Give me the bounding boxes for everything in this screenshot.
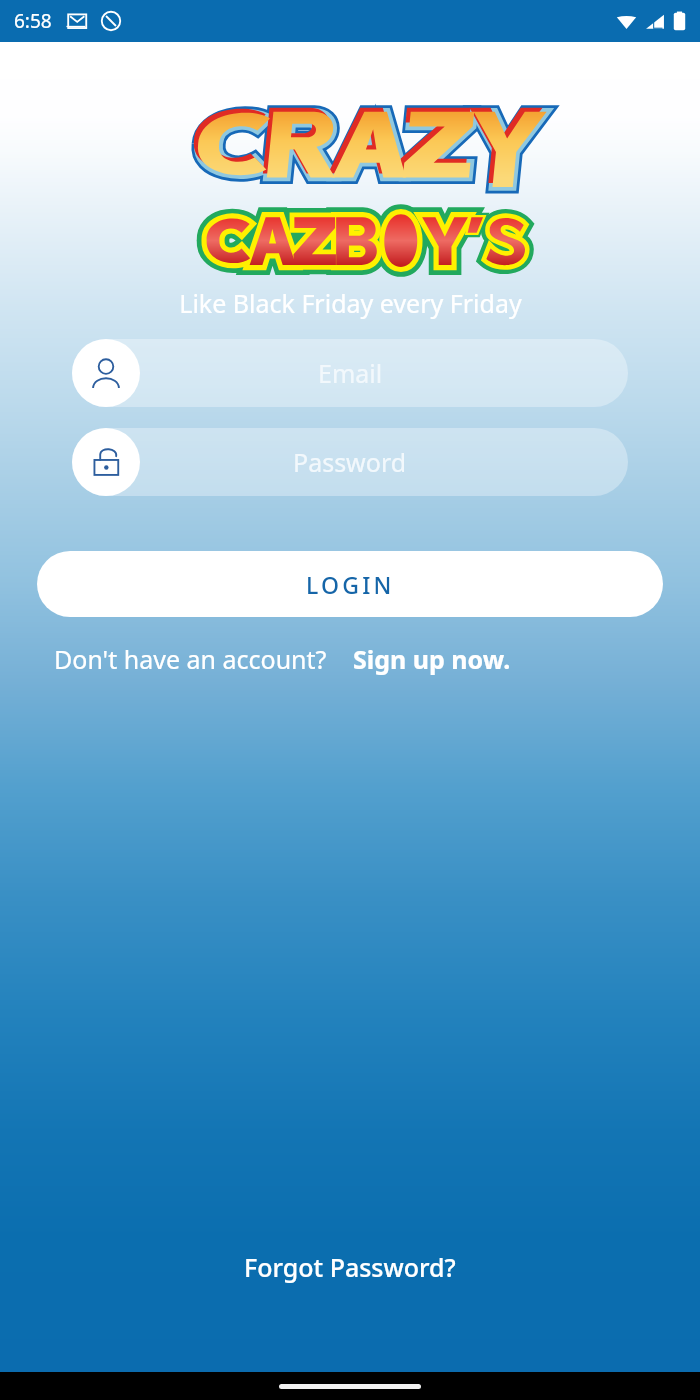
other: Password xyxy=(72,428,140,496)
staticText: Don't have an account? xyxy=(54,642,327,676)
staticText: Sign up now. xyxy=(353,642,511,676)
staticText: LOGIN xyxy=(306,569,395,600)
button[interactable]: Password xyxy=(72,428,628,496)
button[interactable]: Forgot Password? xyxy=(220,1240,480,1294)
staticText: 6:58 xyxy=(14,8,52,34)
staticText: Password xyxy=(293,445,407,479)
button[interactable]: Email xyxy=(72,339,628,407)
staticText: Email xyxy=(318,356,383,390)
other: Email xyxy=(72,339,140,407)
button[interactable]: Sign up now. xyxy=(353,642,511,676)
button[interactable]: LOGIN xyxy=(37,551,663,617)
staticText: Forgot Password? xyxy=(244,1250,456,1284)
staticText: Like Black Friday every Friday xyxy=(179,286,522,320)
